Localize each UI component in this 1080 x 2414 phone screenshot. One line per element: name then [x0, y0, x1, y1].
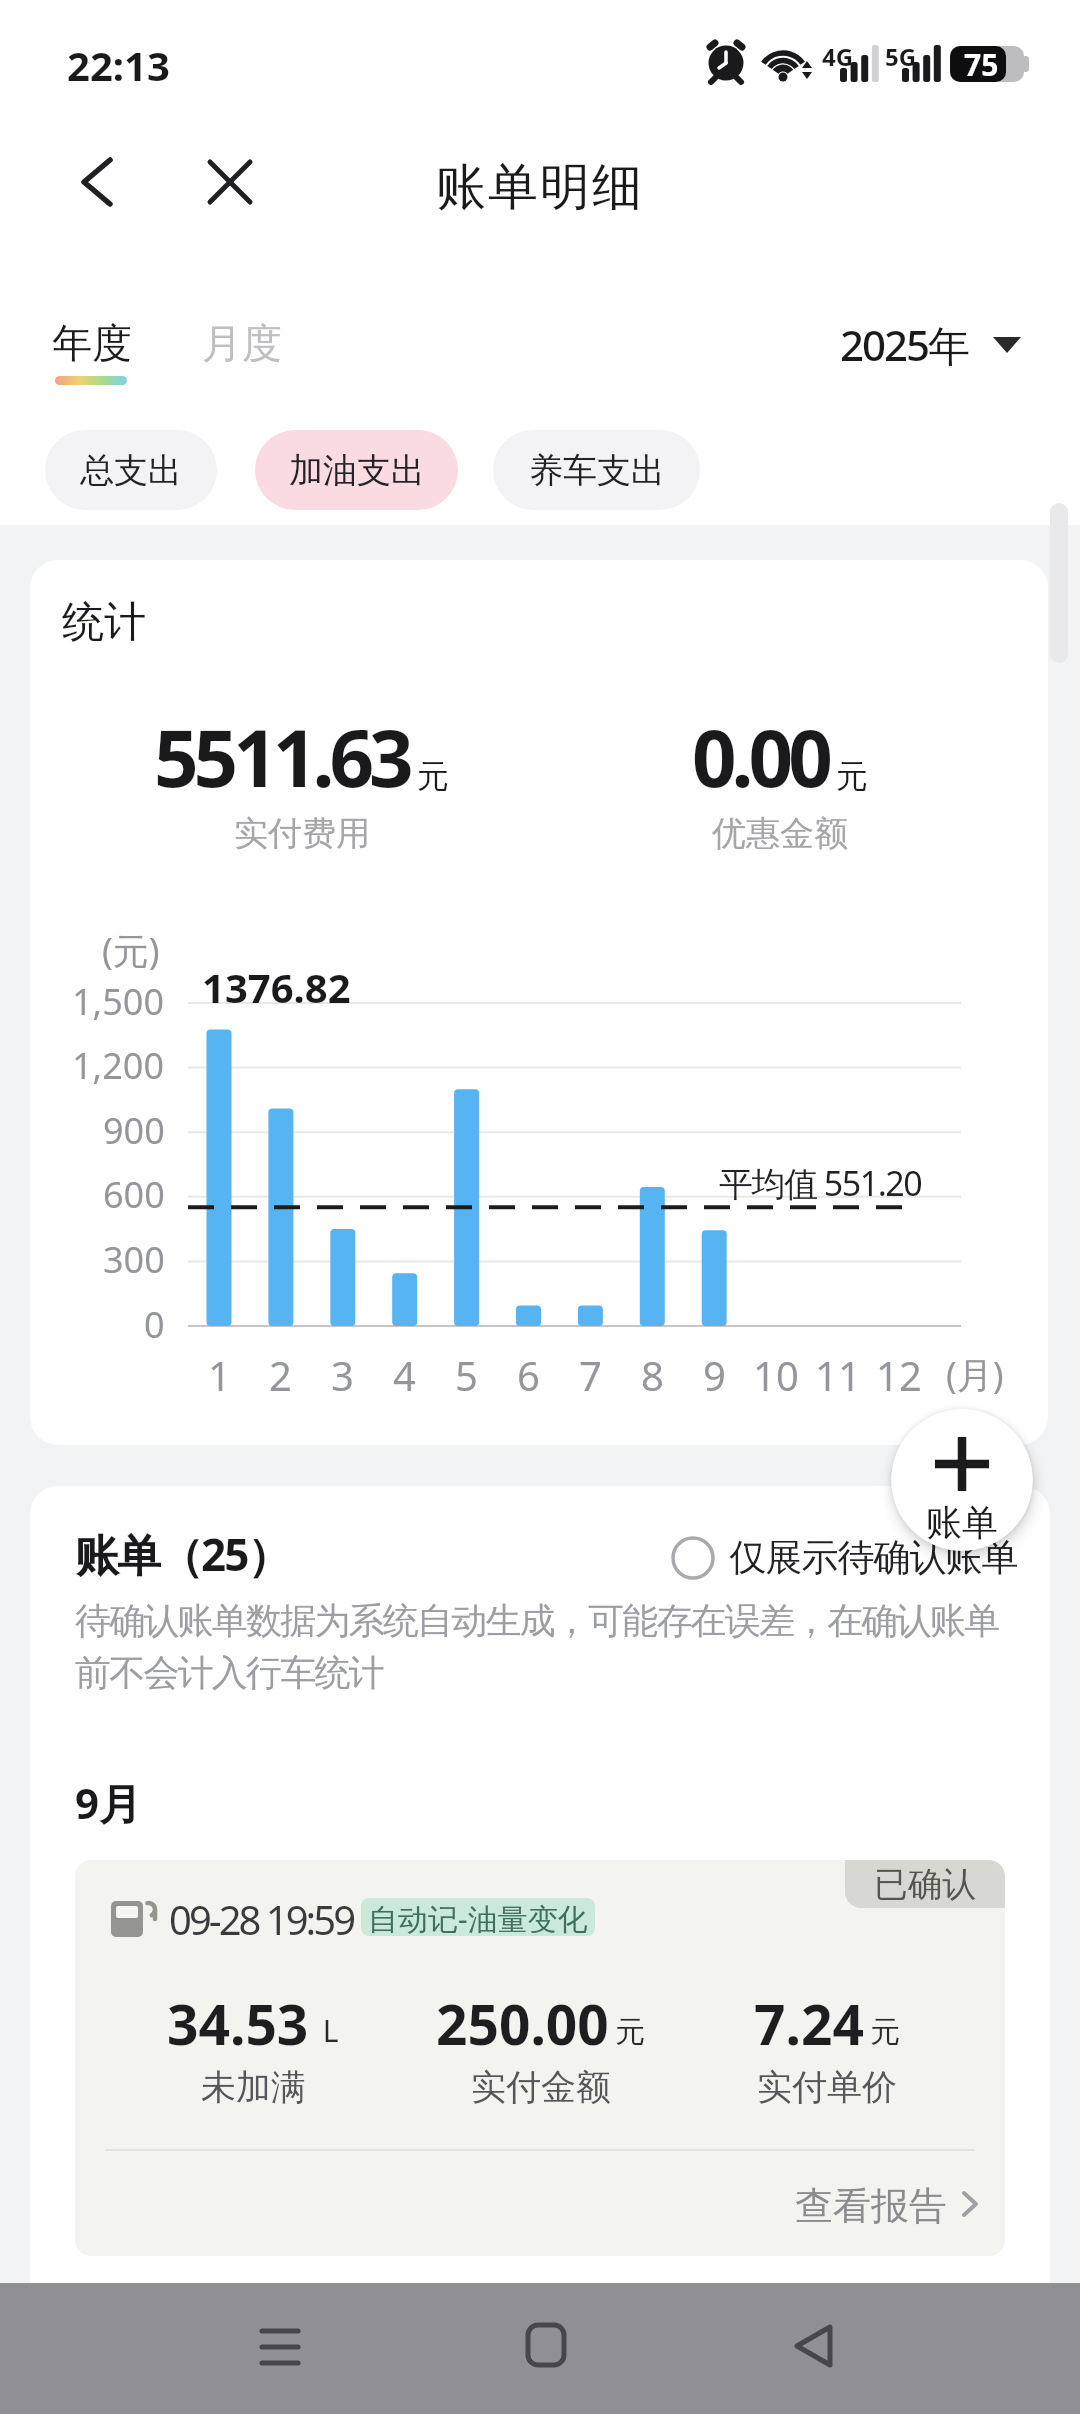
staticText: 09-28 19:59	[169, 1892, 354, 1946]
staticText: 4	[393, 1348, 416, 1402]
staticText: 统计	[62, 596, 146, 649]
staticText: 34.53	[167, 1986, 309, 2061]
staticText: 5G	[885, 40, 917, 73]
staticText: 自动记-油量变化	[368, 1898, 588, 1936]
button[interactable]: 月度	[202, 318, 282, 368]
staticText: (月)	[946, 1350, 1004, 1399]
button[interactable]: 仅展示待确认账单	[670, 1534, 1018, 1606]
staticText: 已确认	[874, 1863, 976, 1906]
staticText: 元	[417, 756, 449, 796]
staticText: 0	[144, 1300, 165, 1349]
staticText: 22:13	[67, 38, 170, 92]
button[interactable]	[202, 154, 258, 210]
button[interactable]: 2025年	[840, 316, 1023, 373]
staticText: 账单（25）	[75, 1524, 290, 1584]
staticText: 8	[641, 1348, 664, 1402]
staticText: 养车支出	[529, 449, 665, 492]
staticText: 1,200	[72, 1041, 165, 1090]
staticText: 10	[753, 1348, 799, 1402]
staticText: L	[315, 2010, 339, 2051]
button[interactable]: 账单	[891, 1409, 1033, 1551]
staticText: 2025年	[840, 316, 969, 373]
staticText: 仅展示待确认账单	[730, 1534, 1018, 1581]
staticText: 实付单价	[757, 2065, 897, 2109]
staticText: 年度	[52, 318, 132, 368]
staticText: 未加满	[201, 2065, 306, 2109]
staticText: 1,500	[72, 977, 165, 1026]
staticText: 600	[103, 1170, 165, 1219]
staticText: 0.00	[692, 704, 828, 810]
staticText: 7	[579, 1348, 602, 1402]
staticText: 账单	[926, 1500, 998, 1545]
staticText: 9月	[75, 1774, 142, 1831]
button[interactable]	[784, 2317, 840, 2373]
staticText: 75	[964, 44, 999, 85]
staticText: 11	[815, 1348, 861, 1402]
button[interactable]: 查看报告	[775, 2176, 985, 2236]
button[interactable]: 总支出	[45, 430, 217, 510]
staticText: 3	[331, 1348, 354, 1402]
staticText: 5511.63	[154, 704, 409, 810]
staticText: 2	[269, 1348, 292, 1402]
staticText: 元	[836, 756, 868, 796]
button[interactable]: 已确认	[75, 1860, 1005, 2256]
button[interactable]: 加油支出	[255, 430, 458, 510]
staticText: 账单明细	[0, 156, 1080, 219]
button[interactable]	[252, 2317, 308, 2373]
staticText: 1376.82	[202, 960, 351, 1014]
staticText: 300	[103, 1235, 165, 1284]
staticText: 元	[615, 2013, 645, 2051]
button[interactable]	[518, 2317, 574, 2373]
staticText: (元)	[102, 926, 160, 975]
staticText: 9	[703, 1348, 726, 1402]
staticText: 250.00	[436, 1986, 609, 2061]
staticText: 加油支出	[289, 449, 425, 492]
staticText: 平均值 551.20	[719, 1160, 922, 1206]
staticText: 6	[517, 1348, 540, 1402]
staticText: 待确认账单数据为系统自动生成，可能存在误差，在确认账单	[75, 1598, 999, 1643]
staticText: 1	[208, 1348, 231, 1402]
staticText: 实付费用	[234, 812, 370, 855]
button[interactable]: 养车支出	[493, 430, 700, 510]
staticText: 4G	[822, 40, 854, 73]
staticText: 12	[876, 1348, 922, 1402]
staticText: 前不会计入行车统计	[75, 1650, 383, 1695]
staticText: 月度	[202, 318, 282, 368]
staticText: 查看报告	[795, 2182, 947, 2230]
staticText: 总支出	[80, 449, 182, 492]
staticText: 7.24	[754, 1986, 864, 2061]
staticText: 元	[870, 2013, 900, 2051]
staticText: 5	[455, 1348, 478, 1402]
staticText: 900	[103, 1106, 165, 1155]
staticText: 实付金额	[471, 2065, 611, 2109]
button[interactable]: 年度	[52, 318, 132, 368]
button[interactable]	[70, 150, 126, 214]
staticText: 优惠金额	[712, 812, 848, 855]
